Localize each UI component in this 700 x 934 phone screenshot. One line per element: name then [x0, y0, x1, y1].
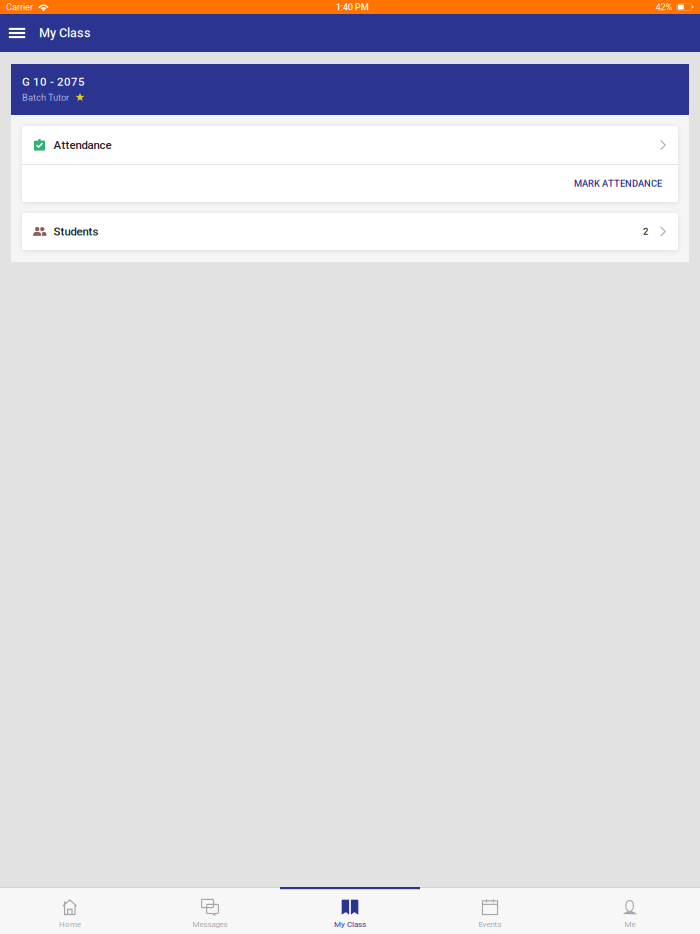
staticText: Me	[624, 920, 635, 929]
staticText: Events	[478, 920, 501, 929]
staticText: Carrier	[6, 1, 33, 12]
button[interactable]: Students	[22, 213, 678, 250]
button[interactable]: Messages	[140, 887, 280, 934]
staticText: Home	[59, 920, 81, 929]
staticText: MARK ATTENDANCE	[574, 178, 662, 189]
button[interactable]: Me	[560, 887, 700, 934]
staticText: 1:40 PM	[336, 1, 369, 12]
button[interactable]: My Class	[280, 887, 420, 934]
staticText: 2	[643, 226, 648, 237]
staticText: Attendance	[53, 138, 111, 152]
button[interactable]: MARK ATTENDANCE	[22, 165, 678, 202]
staticText: Students	[53, 225, 98, 238]
button[interactable]: Home	[0, 887, 140, 934]
staticText: Messages	[192, 920, 227, 929]
staticText: Batch Tutor	[22, 92, 69, 103]
staticText: 42%	[656, 1, 673, 12]
staticText: My Class	[39, 26, 91, 40]
staticText: G 10 - 2075	[22, 75, 85, 88]
button[interactable]: Events	[420, 887, 560, 934]
staticText: My Class	[334, 920, 366, 929]
button[interactable]: Attendance	[22, 126, 678, 164]
button[interactable]: Menu	[0, 17, 33, 48]
